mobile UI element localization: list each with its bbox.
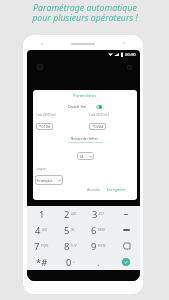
staticText: MNO — [98, 228, 106, 232]
staticText: 9 — [91, 240, 97, 253]
button[interactable]: 6 — [84, 222, 112, 238]
staticText: pour plusieurs opérateurs ! — [32, 12, 138, 24]
staticText: Langue : — [36, 167, 47, 171]
button[interactable]: Backspace — [112, 238, 140, 254]
staticText: Nombre de chiffres : — [71, 137, 100, 141]
staticText: 14 — [79, 154, 84, 159]
staticText: JKL — [71, 228, 76, 232]
button[interactable]: Double Sim — [33, 102, 137, 111]
staticText: PQRS — [41, 244, 49, 248]
staticText: . — [97, 256, 100, 269]
button[interactable]: Dash — [112, 206, 140, 222]
button[interactable]: 4 — [27, 222, 56, 238]
staticText: DEF — [99, 212, 105, 216]
staticText: Paramétrage automatique — [33, 2, 137, 14]
staticText: Nombre de chiffres du code de recharge — [68, 141, 103, 144]
staticText: 1 — [39, 208, 45, 221]
button[interactable]: 9 — [84, 238, 112, 254]
staticText: Français — [37, 178, 53, 183]
staticText: Annuler — [87, 187, 101, 192]
button[interactable]: 5 — [56, 222, 84, 238]
button[interactable]: 14 — [77, 152, 94, 160]
button[interactable]: 3 — [84, 206, 112, 222]
staticText: Code USSD Sim2 — [89, 113, 110, 117]
staticText: Paramètres — [73, 92, 97, 98]
staticText: Enregistrer — [107, 187, 126, 192]
button[interactable]: 0 — [56, 254, 84, 270]
staticText: 3 — [92, 208, 98, 221]
staticText: 00:00 — [125, 52, 136, 58]
staticText: Double Sim — [68, 104, 87, 109]
staticText: 5 — [64, 224, 70, 237]
staticText: WXYZ — [98, 244, 106, 248]
button[interactable]: Enter — [112, 254, 140, 270]
button[interactable]: *020# — [89, 123, 106, 130]
staticText: 4 — [35, 224, 41, 237]
button[interactable]: Enregistrer — [104, 185, 129, 194]
button[interactable]: 7 — [27, 238, 56, 254]
button[interactable]: *# — [27, 254, 56, 270]
staticText: 0 — [66, 256, 72, 269]
other: Power — [127, 65, 132, 70]
button[interactable]: 1 — [27, 206, 56, 222]
staticText: + — [73, 260, 75, 264]
other: Settings — [37, 64, 43, 70]
staticText: 6 — [91, 224, 97, 237]
staticText: Code USSD Sim1 — [36, 113, 57, 117]
staticText: ABC — [71, 212, 77, 216]
staticText: *# — [36, 256, 48, 269]
staticText: *010# — [39, 124, 51, 129]
staticText: 8 — [64, 240, 70, 253]
button[interactable]: Symbols — [112, 222, 140, 238]
staticText: 7 — [34, 240, 40, 253]
button[interactable]: 8 — [56, 238, 84, 254]
staticText: GHI — [42, 228, 48, 232]
button[interactable]: Annuler — [84, 185, 104, 194]
button[interactable]: Français — [35, 175, 63, 185]
button[interactable]: *010# — [36, 123, 53, 130]
staticText: TUV — [71, 244, 77, 248]
staticText: 2 — [64, 208, 70, 221]
button[interactable]: 2 — [56, 206, 84, 222]
staticText: *020# — [92, 124, 104, 129]
button[interactable]: . — [84, 254, 112, 270]
